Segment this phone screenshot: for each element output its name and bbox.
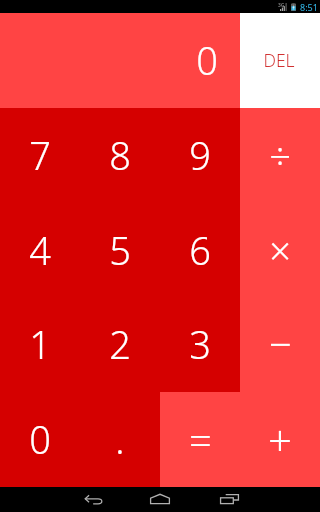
button[interactable]: 8 <box>80 108 160 203</box>
button[interactable]: 2 <box>80 298 160 392</box>
staticText: = <box>189 412 212 466</box>
button[interactable]: Back <box>58 487 126 512</box>
button[interactable]: = <box>160 392 240 487</box>
staticText: 0 <box>196 34 218 86</box>
staticText: − <box>269 316 292 370</box>
staticText: 3 <box>189 318 211 370</box>
button[interactable]: × <box>240 203 320 298</box>
staticText: 8 <box>109 129 131 181</box>
staticText: 5 <box>109 224 131 276</box>
staticText: 4 <box>29 224 51 276</box>
button[interactable]: . <box>80 392 160 487</box>
staticText: 8:51 <box>300 1 318 13</box>
button[interactable]: + <box>240 392 320 487</box>
button[interactable]: DEL <box>240 13 320 108</box>
staticText: 9 <box>189 129 211 181</box>
staticText: + <box>268 411 292 468</box>
staticText: × <box>269 224 291 276</box>
button[interactable]: 4 <box>0 203 80 298</box>
button[interactable]: ÷ <box>240 108 320 203</box>
button[interactable]: 1 <box>0 298 80 392</box>
staticText: ÷ <box>269 129 291 181</box>
staticText: 0 <box>29 413 51 465</box>
button[interactable]: 0 <box>0 13 240 108</box>
button[interactable]: Home <box>126 487 194 512</box>
staticText: DEL <box>263 48 295 72</box>
button[interactable]: 3 <box>160 298 240 392</box>
staticText: . <box>115 413 125 465</box>
button[interactable]: 7 <box>0 108 80 203</box>
button[interactable]: 6 <box>160 203 240 298</box>
button[interactable]: − <box>240 298 320 392</box>
staticText: 6 <box>189 224 211 276</box>
button[interactable]: 9 <box>160 108 240 203</box>
button[interactable]: 0 <box>0 392 80 487</box>
staticText: 2 <box>109 318 131 370</box>
button[interactable]: 5 <box>80 203 160 298</box>
staticText: 7 <box>29 129 51 181</box>
staticText: 1 <box>29 318 51 370</box>
button[interactable]: Recent apps <box>195 487 263 512</box>
staticText: 3G <box>278 2 285 9</box>
